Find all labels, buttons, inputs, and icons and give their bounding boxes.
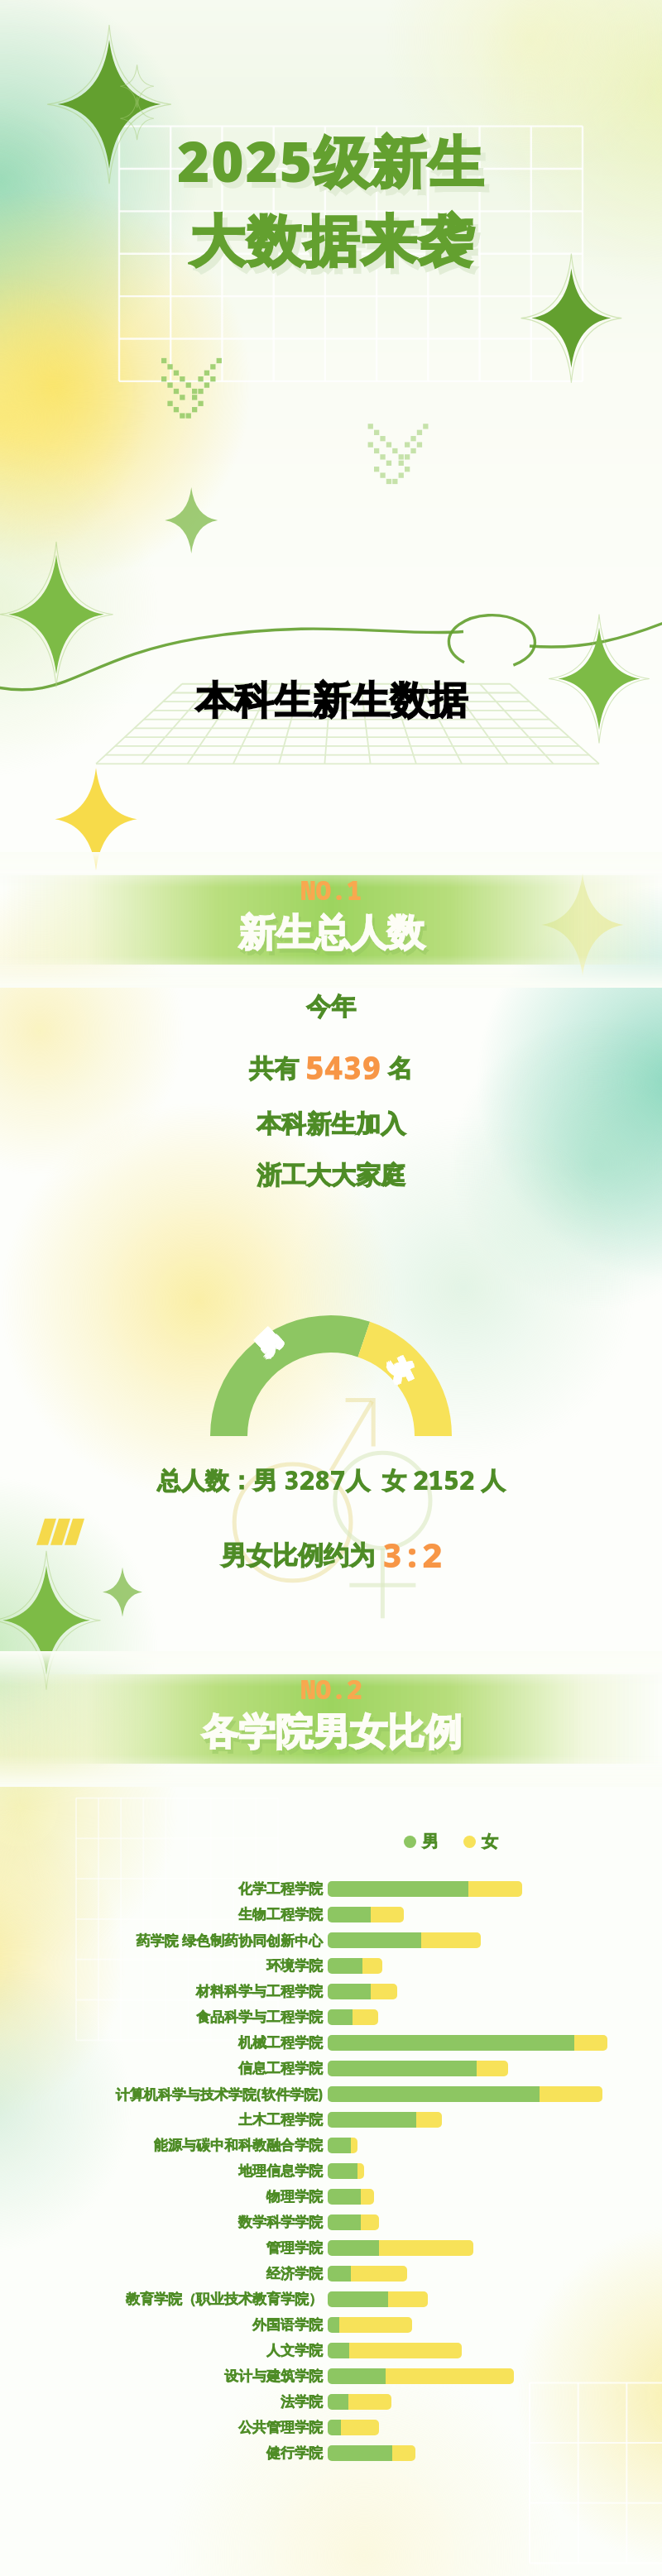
staticText: 设计与建筑学院 bbox=[224, 2368, 323, 2385]
staticText: 5439 bbox=[305, 1046, 381, 1089]
staticText: 大数据来袭 bbox=[189, 207, 474, 276]
staticText: 女 bbox=[386, 1355, 422, 1388]
staticText: 今年 bbox=[306, 991, 356, 1022]
staticText: 人 bbox=[475, 1463, 506, 1496]
staticText: 3:2 bbox=[382, 1532, 442, 1577]
staticText: 材料科学与工程学院 bbox=[196, 1983, 323, 2000]
staticText: 法学院 bbox=[281, 2393, 323, 2411]
staticText: 男 bbox=[250, 1326, 286, 1362]
staticText: 2025级新生 bbox=[182, 128, 491, 204]
button[interactable]: 设计与建筑学院 bbox=[0, 2363, 662, 2389]
button[interactable]: 药学院 绿色制药协同创新中心 bbox=[0, 1927, 662, 1953]
staticText: 男 bbox=[253, 1324, 288, 1359]
button[interactable]: 环境学院 bbox=[0, 1953, 662, 1979]
button[interactable]: 公共管理学院 bbox=[0, 2415, 662, 2440]
staticText: 土木工程学院 bbox=[238, 2111, 323, 2128]
staticText: NO.1 bbox=[300, 873, 362, 907]
staticText: 人 女 bbox=[346, 1463, 413, 1496]
button[interactable]: NO.2 bbox=[0, 1651, 662, 1787]
button[interactable]: 机械工程学院 bbox=[0, 2030, 662, 2056]
staticText: 男 bbox=[254, 1325, 289, 1360]
button[interactable]: 法学院 bbox=[0, 2389, 662, 2415]
staticText: 3287 bbox=[284, 1463, 346, 1497]
staticText: 2152 bbox=[413, 1463, 475, 1497]
staticText: 女 bbox=[384, 1355, 419, 1387]
staticText: 机械工程学院 bbox=[238, 2034, 323, 2052]
staticText: 外国语学院 bbox=[252, 2316, 323, 2334]
staticText: 地理信息学院 bbox=[238, 2162, 323, 2180]
staticText: 信息工程学院 bbox=[238, 2060, 323, 2077]
staticText: 数学科学学院 bbox=[238, 2214, 323, 2231]
staticText: 教育学院（职业技术教育学院） bbox=[126, 2291, 323, 2308]
staticText: 大数据来袭 bbox=[194, 213, 479, 282]
staticText: 食品科学与工程学院 bbox=[196, 2009, 323, 2026]
staticText: 男女比例约为 bbox=[221, 1537, 382, 1572]
staticText: NO.2 bbox=[300, 1672, 362, 1707]
staticText: 经济学院 bbox=[266, 2265, 323, 2282]
button[interactable]: 管理学院 bbox=[0, 2235, 662, 2261]
staticText: 共有 bbox=[249, 1051, 305, 1085]
staticText: 女 bbox=[384, 1355, 419, 1387]
button[interactable]: 地理信息学院 bbox=[0, 2158, 662, 2184]
staticText: 女 bbox=[383, 1355, 418, 1388]
staticText: 女 bbox=[386, 1354, 421, 1386]
button[interactable]: 数学科学学院 bbox=[0, 2210, 662, 2235]
staticText: 计算机科学与技术学院(软件学院) bbox=[115, 2085, 323, 2104]
staticText: 男 bbox=[253, 1326, 288, 1362]
button[interactable]: NO.1 bbox=[0, 852, 662, 988]
staticText: 男 bbox=[422, 1831, 439, 1852]
button[interactable]: 信息工程学院 bbox=[0, 2056, 662, 2081]
staticText: 环境学院 bbox=[266, 1957, 323, 1975]
staticText: 浙工大大家庭 bbox=[257, 1160, 405, 1191]
button[interactable]: 生物工程学院 bbox=[0, 1902, 662, 1927]
staticText: 女 bbox=[385, 1352, 420, 1385]
button[interactable]: 食品科学与工程学院 bbox=[0, 2004, 662, 2030]
staticText: 各学院男女比例 bbox=[201, 1709, 462, 1756]
staticText: 新生总人数 bbox=[238, 910, 425, 957]
staticText: 人文学院 bbox=[266, 2342, 323, 2359]
staticText: 女 bbox=[382, 1354, 417, 1386]
staticText: 女 bbox=[383, 1353, 419, 1385]
staticText: 男 bbox=[252, 1325, 287, 1360]
staticText: 女 bbox=[383, 1357, 419, 1389]
staticText: 物理学院 bbox=[266, 2188, 323, 2205]
staticText: 本科新生加入 bbox=[257, 1108, 405, 1140]
staticText: 2025级新生 bbox=[177, 122, 486, 199]
button[interactable]: 外国语学院 bbox=[0, 2312, 662, 2338]
staticText: 男 bbox=[249, 1325, 285, 1360]
staticText: 健行学院 bbox=[266, 2444, 323, 2462]
button[interactable]: 计算机科学与技术学院(软件学院) bbox=[0, 2081, 662, 2107]
staticText: 新生总人数 bbox=[241, 914, 427, 961]
button[interactable]: 人文学院 bbox=[0, 2338, 662, 2363]
staticText: 药学院 绿色制药协同创新中心 bbox=[136, 1931, 323, 1950]
staticText: 公共管理学院 bbox=[238, 2419, 323, 2436]
staticText: 化学工程学院 bbox=[238, 1880, 323, 1898]
button[interactable]: 能源与碳中和科教融合学院 bbox=[0, 2133, 662, 2158]
staticText: 管理学院 bbox=[266, 2239, 323, 2257]
button[interactable]: 材料科学与工程学院 bbox=[0, 1979, 662, 2004]
button[interactable]: 物理学院 bbox=[0, 2184, 662, 2210]
staticText: 女 bbox=[385, 1356, 420, 1388]
button[interactable]: 健行学院 bbox=[0, 2440, 662, 2466]
staticText: 女 bbox=[482, 1831, 498, 1852]
button[interactable]: 土木工程学院 bbox=[0, 2107, 662, 2133]
staticText: 男 bbox=[250, 1324, 286, 1359]
staticText: 男 bbox=[252, 1322, 287, 1358]
staticText: 名 bbox=[381, 1051, 413, 1085]
staticText: 男 bbox=[252, 1325, 287, 1360]
staticText: 各学院男女比例 bbox=[204, 1713, 464, 1760]
staticText: 总人数：男 bbox=[157, 1463, 284, 1496]
staticText: 能源与碳中和科教融合学院 bbox=[154, 2137, 323, 2154]
button[interactable]: 经济学院 bbox=[0, 2261, 662, 2286]
button[interactable]: 教育学院（职业技术教育学院） bbox=[0, 2286, 662, 2312]
staticText: 本科生新生数据 bbox=[195, 677, 468, 725]
staticText: 男 bbox=[251, 1327, 287, 1363]
button[interactable]: 化学工程学院 bbox=[0, 1876, 662, 1902]
staticText: 生物工程学院 bbox=[238, 1906, 323, 1923]
